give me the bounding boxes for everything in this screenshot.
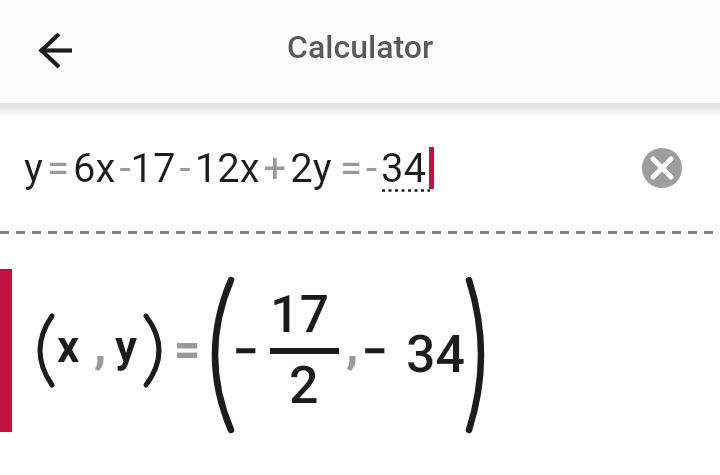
staticText: y = 6x -17 - 12x + 2y = - 34	[24, 145, 427, 192]
staticText: =	[174, 322, 201, 376]
staticText: −	[362, 324, 388, 378]
staticText: −	[233, 324, 259, 378]
button[interactable]	[32, 26, 80, 74]
staticText: x	[57, 321, 80, 373]
staticText: 2	[289, 355, 319, 416]
staticText: 17	[270, 284, 330, 345]
button[interactable]	[0, 112, 720, 228]
staticText: ,	[94, 316, 107, 375]
staticText: y	[115, 321, 138, 373]
button[interactable]	[0, 245, 720, 460]
button[interactable]	[642, 148, 682, 188]
staticText: ,	[346, 316, 359, 375]
staticText: Calculator	[287, 28, 434, 66]
staticText: 34	[406, 324, 466, 385]
